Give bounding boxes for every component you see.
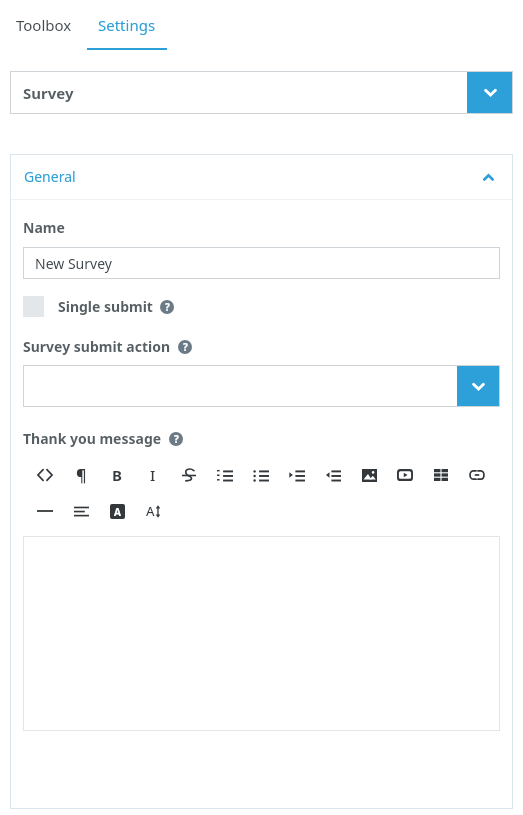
- button[interactable]: Insert image: [351, 464, 387, 486]
- button[interactable]: Text colour: [99, 500, 135, 522]
- button[interactable]: Increase indent: [279, 464, 315, 486]
- button[interactable]: General: [10, 154, 513, 199]
- staticText: Thank you message: [23, 429, 162, 448]
- other: Open survey list: [467, 71, 513, 114]
- button[interactable]: Font size: [135, 500, 171, 522]
- other: Help: [169, 432, 183, 446]
- button[interactable]: Decrease indent: [315, 464, 351, 486]
- staticText: B: [112, 465, 122, 485]
- button[interactable]: Open submit action list: [23, 365, 500, 407]
- button[interactable]: New Survey: [23, 247, 500, 279]
- button[interactable]: Survey: [10, 71, 513, 114]
- button[interactable]: Paragraph: [63, 464, 99, 486]
- button[interactable]: Align: [63, 500, 99, 522]
- staticText: A: [114, 505, 121, 519]
- button[interactable]: Insert link: [459, 464, 495, 486]
- staticText: I: [150, 465, 156, 485]
- button[interactable]: Horizontal rule: [27, 500, 63, 522]
- button[interactable]: Bold: [99, 464, 135, 486]
- button[interactable]: Bullet list: [243, 464, 279, 486]
- staticText: Name: [23, 218, 65, 237]
- button[interactable]: Insert video: [387, 464, 423, 486]
- button[interactable]: Settings: [84, 0, 170, 50]
- staticText: Settings: [98, 15, 156, 35]
- button[interactable]: Strikethrough: [171, 464, 207, 486]
- button[interactable]: Numbered list: [207, 464, 243, 486]
- button[interactable]: Italic: [135, 464, 171, 486]
- other: Help: [160, 300, 174, 314]
- button[interactable]: Insert table: [423, 464, 459, 486]
- button[interactable]: Source code: [27, 464, 63, 486]
- staticText: Toolbox: [16, 15, 72, 35]
- button[interactable]: Single submit: [23, 296, 174, 317]
- staticText: General: [24, 167, 76, 186]
- staticText: ?: [165, 300, 170, 314]
- staticText: ?: [174, 432, 179, 446]
- staticText: New Survey: [35, 254, 112, 273]
- other: Help: [178, 340, 192, 354]
- staticText: Survey submit action: [23, 337, 171, 356]
- staticText: ¶: [76, 464, 87, 486]
- staticText: A: [146, 502, 155, 520]
- staticText: Single submit: [58, 297, 153, 316]
- button[interactable]: [23, 536, 500, 731]
- staticText: ?: [183, 340, 188, 354]
- staticText: Survey: [23, 83, 74, 103]
- button[interactable]: Toolbox: [4, 0, 84, 50]
- other: Open submit action list: [457, 365, 500, 407]
